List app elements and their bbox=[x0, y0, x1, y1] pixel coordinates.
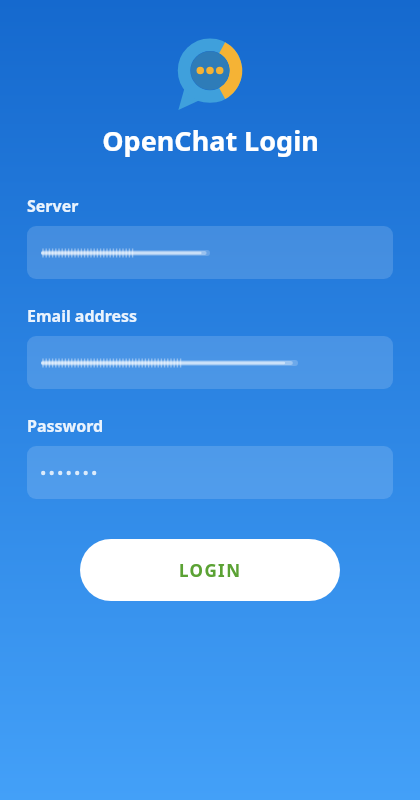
staticText: Email address bbox=[27, 305, 138, 327]
staticText: OpenChat Login bbox=[102, 122, 319, 159]
button[interactable] bbox=[27, 336, 393, 389]
staticText: Server bbox=[27, 195, 79, 217]
button[interactable] bbox=[27, 446, 393, 499]
button[interactable] bbox=[27, 226, 393, 279]
staticText: LOGIN bbox=[179, 559, 242, 582]
button[interactable]: LOGIN bbox=[80, 539, 340, 601]
other: OpenChat logo bbox=[174, 40, 246, 108]
staticText: Password bbox=[27, 415, 104, 437]
